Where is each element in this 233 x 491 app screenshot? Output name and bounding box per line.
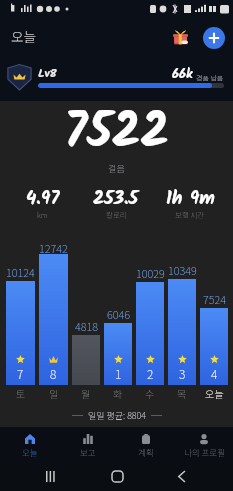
staticText: 7 bbox=[17, 365, 24, 382]
staticText: 오늘 bbox=[22, 446, 38, 458]
staticText: 목 bbox=[177, 386, 187, 400]
staticText: 1 bbox=[115, 365, 122, 382]
staticText: 나의 프로필 bbox=[184, 446, 225, 458]
staticText: 2 bbox=[147, 365, 154, 382]
button[interactable]: Add bbox=[203, 27, 225, 49]
staticText: 8 bbox=[50, 365, 57, 382]
staticText: 253.5 bbox=[93, 184, 139, 214]
staticText: 66k bbox=[172, 64, 193, 85]
staticText: 10029 bbox=[136, 265, 165, 281]
staticText: 일일 평균: 8804 bbox=[88, 409, 146, 422]
staticText: 일 bbox=[49, 386, 59, 400]
button[interactable]: 8 bbox=[39, 240, 68, 406]
staticText: 4818 bbox=[75, 318, 98, 334]
staticText: 3 bbox=[179, 365, 186, 382]
staticText: 10349 bbox=[168, 262, 197, 278]
staticText: 4.97 bbox=[26, 184, 60, 214]
staticText: 7522 bbox=[64, 95, 170, 173]
button[interactable]: 3 bbox=[168, 240, 196, 406]
staticText: 오늘 bbox=[205, 386, 224, 400]
staticText: 4 bbox=[211, 365, 218, 382]
staticText: 화 bbox=[113, 386, 123, 400]
button[interactable]: Home bbox=[106, 465, 128, 487]
staticText: 걸음 bbox=[108, 162, 125, 175]
staticText: 보행 시간 bbox=[175, 209, 205, 220]
staticText: 보고 bbox=[80, 446, 96, 458]
button[interactable]: Rewards bbox=[169, 26, 191, 48]
button[interactable]: 2 bbox=[136, 240, 164, 406]
staticText: Lv8 bbox=[38, 64, 57, 83]
button[interactable]: 1 bbox=[104, 240, 132, 406]
staticText: 토 bbox=[16, 386, 26, 400]
staticText: 수 bbox=[145, 386, 155, 400]
button[interactable]: 계획 bbox=[117, 427, 175, 465]
staticText: 6046 bbox=[107, 306, 130, 322]
button[interactable]: Back bbox=[170, 465, 192, 487]
staticText: km bbox=[37, 209, 48, 220]
button[interactable]: 보고 bbox=[59, 427, 117, 465]
button[interactable]: 오늘 bbox=[0, 427, 59, 465]
staticText: 12742 bbox=[39, 240, 68, 253]
staticText: 경품 남음 bbox=[196, 73, 224, 83]
staticText: 계획 bbox=[138, 446, 154, 458]
staticText: 10124 bbox=[6, 264, 35, 280]
button[interactable]: 4818 bbox=[72, 240, 100, 406]
staticText: 월 bbox=[81, 386, 91, 400]
button[interactable]: Recent apps bbox=[39, 465, 61, 487]
button[interactable]: 나의 프로필 bbox=[175, 427, 233, 465]
staticText: 오늘 bbox=[11, 26, 36, 46]
button[interactable]: 7 bbox=[6, 240, 35, 406]
button[interactable]: 4 bbox=[200, 240, 228, 406]
staticText: 칼로리 bbox=[106, 209, 127, 220]
staticText: 7524 bbox=[203, 291, 226, 307]
staticText: 1h 9m bbox=[166, 184, 215, 214]
